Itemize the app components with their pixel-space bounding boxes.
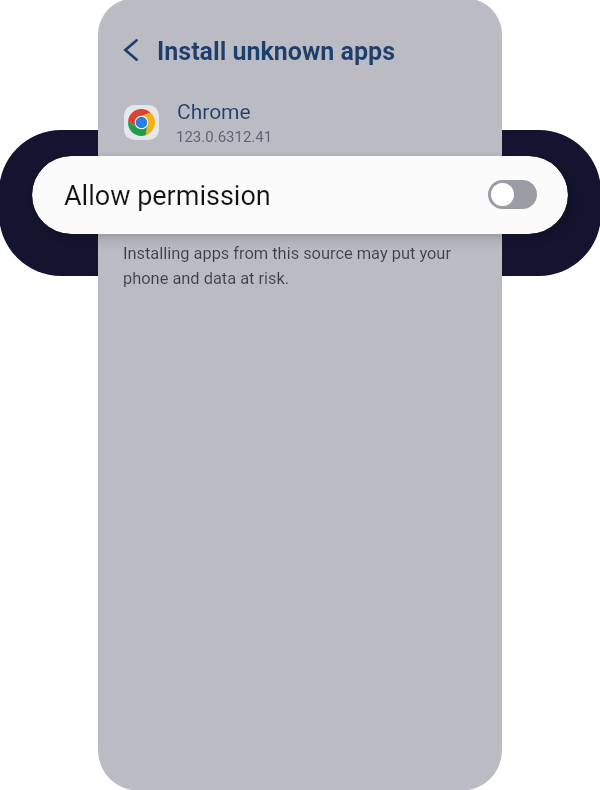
staticText: Installing apps from this source may put…	[123, 244, 463, 288]
button[interactable]: Allow permission	[32, 156, 568, 234]
button[interactable]: Back	[109, 28, 153, 72]
staticText: Chrome	[177, 100, 251, 125]
button[interactable]: Allow permission toggle	[488, 180, 537, 209]
staticText: Install unknown apps	[157, 37, 396, 66]
staticText: Allow permission	[64, 180, 488, 212]
staticText: 123.0.6312.41	[176, 128, 273, 146]
button[interactable]: Chrome	[116, 99, 496, 147]
